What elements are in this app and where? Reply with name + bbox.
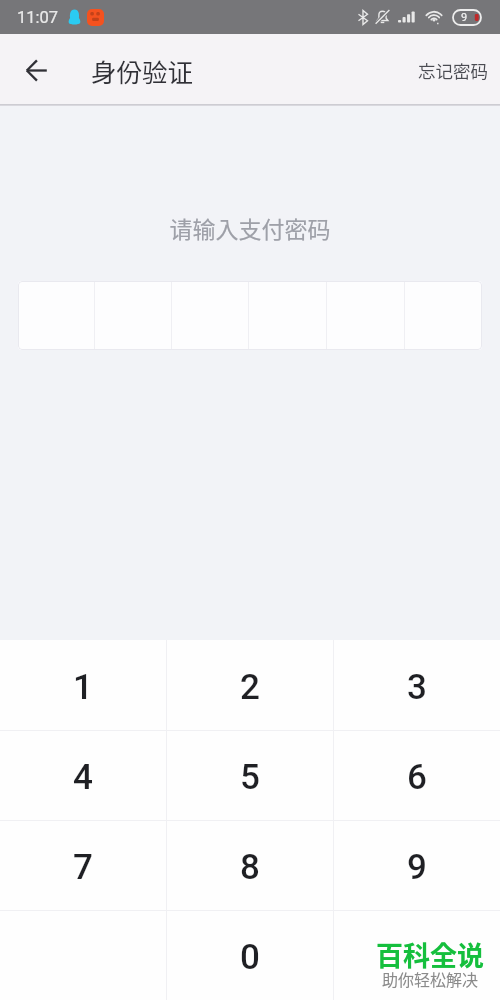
staticText: 身份验证 [91, 52, 194, 89]
button[interactable]: 2 [167, 640, 333, 730]
staticText: 请输入支付密码 [0, 211, 500, 244]
staticText: 5 [240, 757, 260, 798]
staticText: 百科全说 [376, 935, 484, 974]
staticText: 3 [407, 667, 427, 708]
button[interactable]: 6 [334, 731, 500, 820]
staticText: 4 [73, 757, 93, 798]
button[interactable] [405, 281, 482, 350]
staticText: 助你轻松解决 [382, 967, 479, 990]
button[interactable]: 4 [0, 731, 166, 820]
button[interactable]: Back [0, 37, 72, 104]
button[interactable]: 7 [0, 821, 166, 910]
staticText: 忘记密码 [418, 58, 488, 83]
button[interactable] [327, 281, 404, 350]
button[interactable] [18, 281, 94, 350]
staticText: 6 [407, 757, 427, 798]
staticText: 9 [461, 11, 468, 24]
staticText: 9 [407, 847, 427, 888]
staticText: 0 [240, 937, 260, 978]
staticText: 2 [240, 667, 260, 708]
button[interactable]: 8 [167, 821, 333, 910]
button[interactable]: 0 [167, 911, 333, 1000]
button[interactable] [172, 281, 248, 350]
button[interactable] [95, 281, 171, 350]
staticText: 1 [73, 667, 93, 708]
button[interactable]: 5 [167, 731, 333, 820]
button[interactable]: 3 [334, 640, 500, 730]
button[interactable]: 忘记密码 [399, 37, 500, 104]
button[interactable] [334, 911, 500, 1000]
staticText: 8 [240, 847, 260, 888]
button[interactable]: 1 [0, 640, 166, 730]
staticText: 11:07 [17, 8, 59, 27]
staticText: 7 [73, 847, 93, 888]
button[interactable]: 9 [334, 821, 500, 910]
button[interactable] [249, 281, 326, 350]
